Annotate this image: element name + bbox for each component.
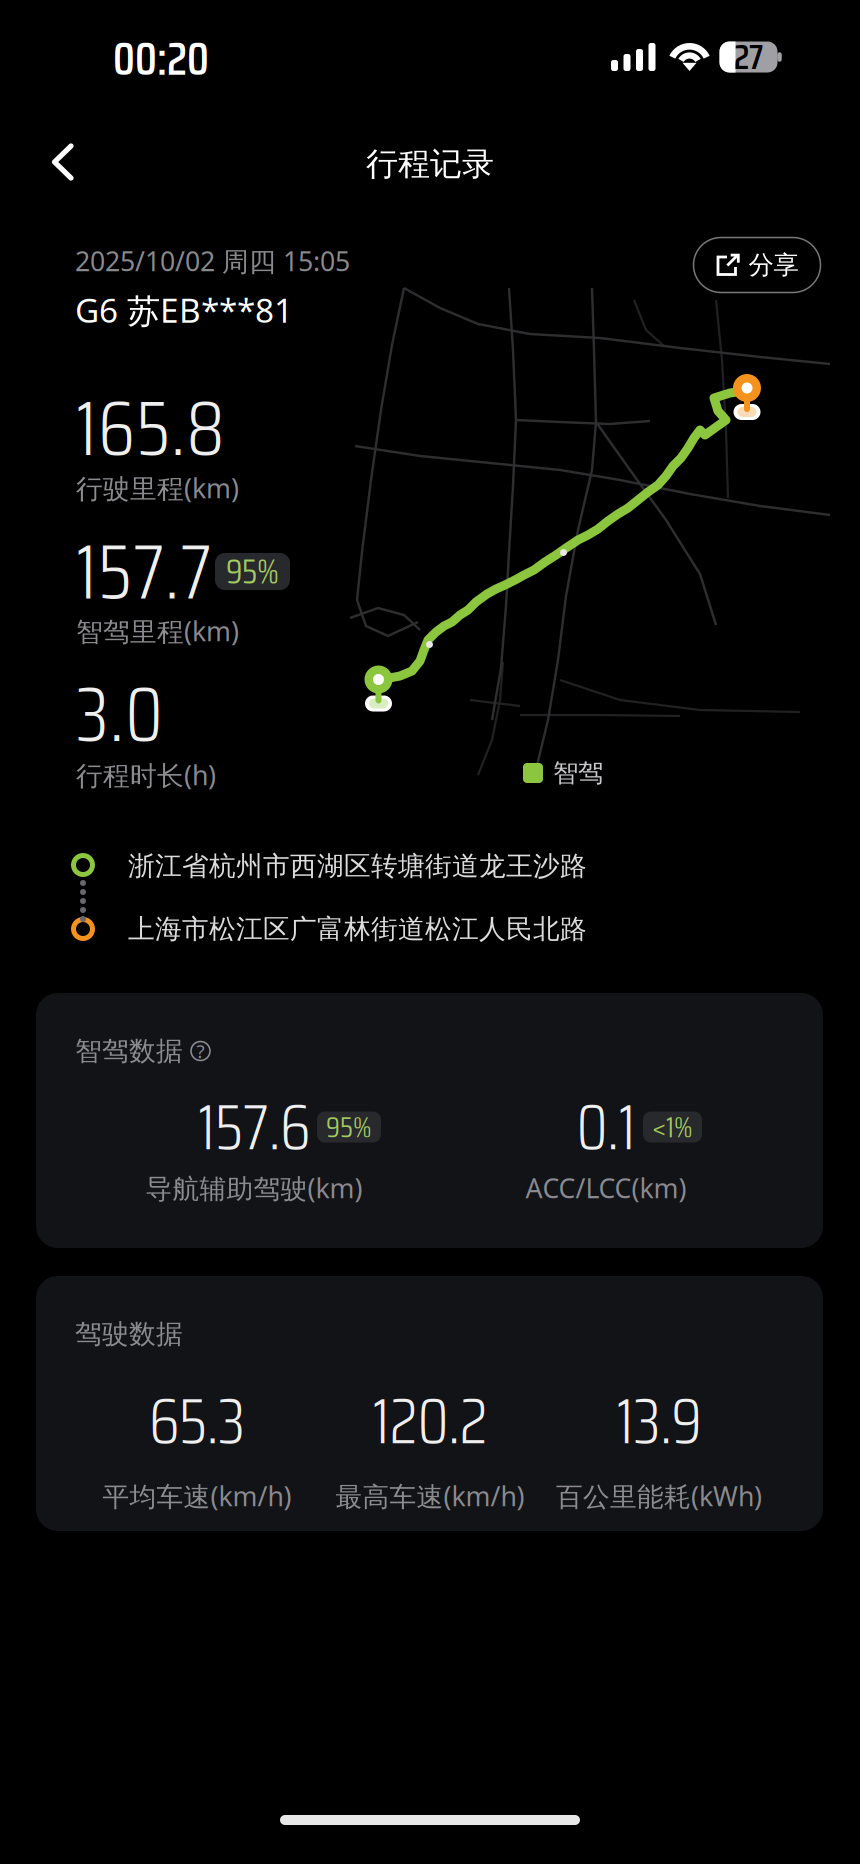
staticText: 157.7 xyxy=(76,511,211,632)
staticText: 3.0 xyxy=(76,653,163,775)
staticText: G6 苏EB***81 xyxy=(75,288,293,332)
staticText: 驾驶数据 xyxy=(75,1318,183,1350)
staticText: 行程时长(h) xyxy=(76,757,216,793)
staticText: 行程记录 xyxy=(366,144,494,184)
staticText: 智驾里程(km) xyxy=(76,613,239,649)
staticText: 分享 xyxy=(748,249,798,280)
button[interactable]: 返回 xyxy=(25,124,101,200)
staticText: 13.9 xyxy=(616,1371,701,1471)
button[interactable]: 分享 xyxy=(693,237,820,292)
staticText: 导航辅助驾驶(km) xyxy=(145,1170,362,1206)
staticText: 百公里能耗(kWh) xyxy=(556,1478,762,1514)
staticText: 行驶里程(km) xyxy=(76,470,239,506)
staticText: 最高车速(km/h) xyxy=(335,1478,524,1514)
staticText: 120.2 xyxy=(372,1371,487,1471)
staticText: 平均车速(km/h) xyxy=(102,1478,291,1514)
staticText: 95% xyxy=(326,1104,372,1150)
staticText: <1% xyxy=(652,1104,693,1150)
staticText: 00:20 xyxy=(113,23,209,95)
staticText: 浙江省杭州市西湖区转塘街道龙王沙路 xyxy=(128,850,587,882)
staticText: 27 xyxy=(734,30,763,84)
staticText: 95% xyxy=(226,544,279,599)
staticText: 0.1 xyxy=(576,1077,635,1177)
staticText: ACC/LCC(km) xyxy=(525,1170,686,1206)
staticText: 157.6 xyxy=(198,1077,310,1177)
staticText: 165.8 xyxy=(76,367,224,489)
staticText: 65.3 xyxy=(149,1371,245,1471)
staticText: 上海市松江区广富林街道松江人民北路 xyxy=(128,913,587,945)
staticText: 智驾数据 xyxy=(75,1035,183,1067)
staticText: 2025/10/02 周四 15:05 xyxy=(75,243,350,279)
staticText: ? xyxy=(196,1039,204,1063)
staticText: 智驾 xyxy=(553,757,603,788)
